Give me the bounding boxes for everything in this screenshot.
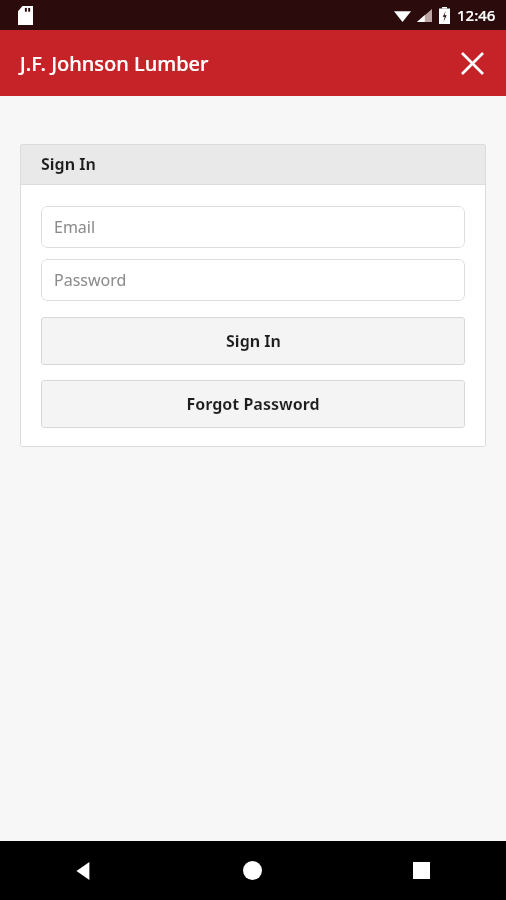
staticText: Forgot Password xyxy=(186,393,320,415)
button[interactable]: Password xyxy=(41,259,465,301)
staticText: Sign In xyxy=(41,153,96,175)
button[interactable]: Email xyxy=(41,206,465,248)
button[interactable]: Close xyxy=(448,39,496,87)
staticText: J.F. Johnson Lumber xyxy=(20,50,209,77)
staticText: 12:46 xyxy=(457,5,496,25)
button[interactable]: Forgot Password xyxy=(41,380,465,428)
button[interactable]: Back xyxy=(0,841,168,900)
button[interactable]: Sign In xyxy=(41,317,465,365)
staticText: Sign In xyxy=(226,330,281,352)
staticText: Password xyxy=(54,269,127,291)
button[interactable]: Home xyxy=(168,841,337,900)
staticText: Email xyxy=(54,216,96,238)
button[interactable]: Recent apps xyxy=(337,841,506,900)
